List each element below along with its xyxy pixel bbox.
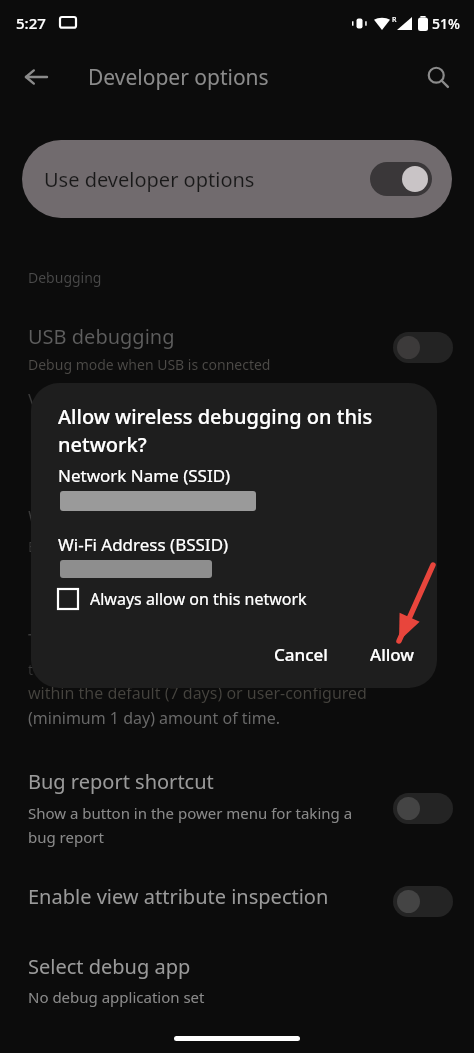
staticText: Debugging [28, 268, 102, 287]
staticText: No debug application set [28, 987, 205, 1007]
staticText: Always allow on this network [90, 588, 307, 610]
staticText: Wi-Fi Address (BSSID) [58, 533, 229, 556]
staticText: Debug mode when USB is connected [28, 355, 271, 374]
button[interactable]: Enable view attribute inspection toggle [393, 886, 453, 917]
staticText: Use developer options [44, 166, 255, 193]
button[interactable]: Back [12, 53, 60, 101]
staticText: Cancel [274, 643, 328, 666]
button[interactable]: Always allow on this network [58, 588, 413, 610]
staticText: W [28, 505, 46, 531]
staticText: 5:27 [16, 13, 46, 33]
staticText: Allow [370, 643, 415, 666]
staticText: T [28, 628, 39, 654]
staticText: Developer options [88, 63, 269, 92]
button[interactable]: USB debugging toggle [393, 332, 453, 363]
staticText: within the default (7 days) or user-conf… [28, 682, 367, 704]
button[interactable]: Cancel [260, 635, 342, 674]
button[interactable]: Allow [356, 635, 429, 674]
button[interactable]: Bug report shortcut toggle [393, 793, 453, 824]
staticText: R [392, 15, 397, 25]
staticText: Select debug app [28, 953, 191, 980]
staticText: Allow wireless debugging on this network… [58, 403, 413, 458]
staticText: Bug report shortcut [28, 768, 214, 795]
staticText: V [28, 388, 40, 414]
staticText: USB debugging [28, 323, 175, 350]
staticText: t [28, 660, 34, 679]
staticText: Enable view attribute inspection [28, 883, 329, 910]
staticText: E [28, 537, 36, 556]
staticText: Show a button in the power menu for taki… [28, 803, 368, 847]
button[interactable]: Search [414, 53, 462, 101]
button[interactable]: Use developer options [22, 140, 452, 218]
staticText: (minimum 1 day) amount of time. [28, 707, 280, 729]
staticText: Network Name (SSID) [58, 464, 231, 487]
staticText: 51% [432, 14, 460, 33]
